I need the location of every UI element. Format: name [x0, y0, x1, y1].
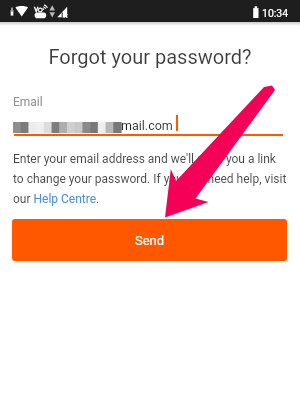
staticText: mail.com [121, 118, 173, 133]
staticText: Enter your email address and we'll send … [13, 152, 287, 206]
staticText: 10:34 [262, 7, 289, 19]
staticText: Send [135, 233, 165, 248]
staticText: Forgot your password? [0, 45, 300, 68]
staticText: Email [13, 95, 43, 109]
button[interactable]: Send [12, 219, 287, 261]
